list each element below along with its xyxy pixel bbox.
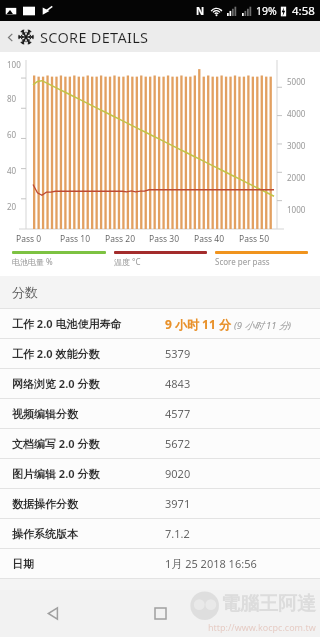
staticText: 9020	[165, 466, 191, 481]
button[interactable]: 视频编辑分数	[0, 399, 320, 428]
staticText: 80	[7, 93, 17, 104]
button[interactable]: 工作 2.0 效能分数	[0, 339, 320, 368]
staticText: N	[196, 4, 205, 18]
button[interactable]: Back	[0, 590, 106, 637]
button[interactable]: 图片编辑 2.0 分数	[0, 459, 320, 488]
staticText: 20	[7, 201, 17, 212]
button[interactable]: 日期	[0, 549, 320, 578]
staticText: 视频编辑分数	[12, 407, 78, 421]
staticText: 4000	[287, 108, 306, 119]
staticText: 3971	[165, 496, 191, 511]
staticText: Pass 10	[60, 233, 90, 245]
button[interactable]: Recents	[214, 590, 320, 637]
staticText: 電腦王阿達	[221, 592, 316, 616]
staticText: 3000	[287, 140, 306, 151]
staticText: 19%	[256, 4, 277, 18]
staticText: 操作系统版本	[12, 527, 78, 541]
staticText: 5672	[165, 436, 191, 451]
staticText: Pass 20	[105, 233, 135, 245]
staticText: SCORE DETAILS	[40, 27, 149, 47]
staticText: Pass 30	[149, 233, 179, 245]
staticText: 1月 25 2018 16:56	[165, 556, 257, 571]
button[interactable]: 工作 2.0 电池使用寿命	[0, 309, 320, 338]
button[interactable]: 文档编写 2.0 分数	[0, 429, 320, 458]
staticText: 文档编写 2.0 分数	[12, 436, 100, 451]
staticText: 日期	[12, 557, 34, 571]
staticText: Pass 50	[239, 233, 269, 245]
staticText: 4:58	[292, 3, 315, 19]
staticText: http://www.kocpc.com.tw	[208, 621, 316, 633]
staticText: 5379	[165, 346, 191, 361]
staticText: 图片编辑 2.0 分数	[12, 466, 100, 481]
staticText: 100	[7, 59, 21, 70]
staticText: 工作 2.0 效能分数	[12, 346, 100, 361]
staticText: 温度 °C	[114, 256, 141, 267]
button[interactable]: 操作系统版本	[0, 519, 320, 548]
staticText: 7.1.2	[165, 526, 190, 541]
button[interactable]: 网络浏览 2.0 分数	[0, 369, 320, 398]
staticText: 9 小时 11 分	[165, 316, 231, 332]
staticText: 数据操作分数	[12, 497, 78, 511]
staticText: 电池电量 %	[12, 256, 53, 267]
staticText: 2000	[287, 172, 306, 183]
staticText: 1000	[287, 204, 306, 215]
staticText: 40	[7, 165, 17, 176]
staticText: 工作 2.0 电池使用寿命	[12, 316, 122, 331]
button[interactable]: Home	[107, 590, 213, 637]
staticText: 5000	[287, 76, 306, 87]
staticText: Score per pass	[215, 256, 270, 267]
staticText: Pass 40	[194, 233, 224, 245]
staticText: 网络浏览 2.0 分数	[12, 376, 100, 391]
button[interactable]: Back	[2, 29, 18, 45]
staticText: (9 小时 11 分)	[234, 319, 292, 332]
staticText: Pass 0	[16, 233, 42, 245]
staticText: 4577	[165, 406, 191, 421]
button[interactable]: 数据操作分数	[0, 489, 320, 518]
staticText: 60	[7, 129, 17, 140]
staticText: 分数	[12, 284, 38, 300]
staticText: 4843	[165, 376, 191, 391]
